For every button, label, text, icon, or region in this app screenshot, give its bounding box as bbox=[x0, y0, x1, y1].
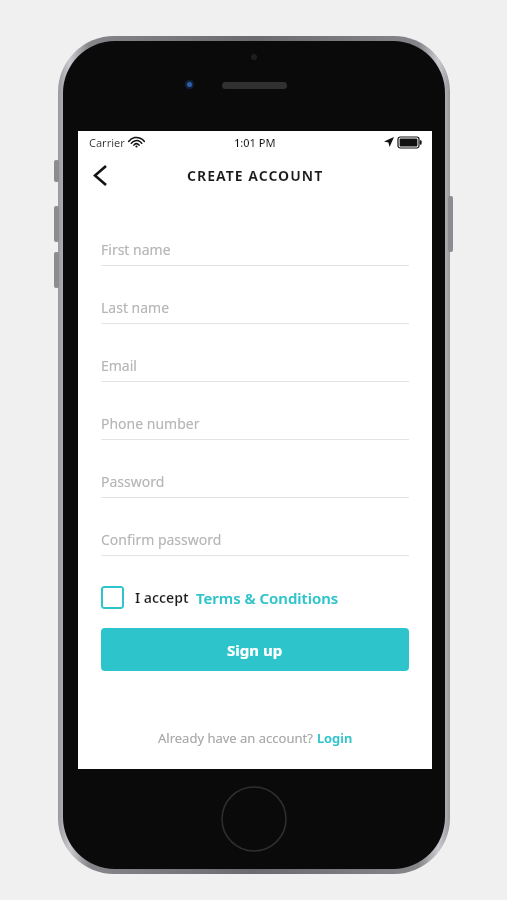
button[interactable]: Terms & Conditions bbox=[196, 588, 339, 608]
staticText: I accept bbox=[135, 588, 189, 607]
staticText: CREATE ACCOUNT bbox=[187, 166, 324, 185]
staticText: Password bbox=[101, 472, 165, 491]
button[interactable]: First name bbox=[101, 225, 409, 266]
button[interactable]: Phone number bbox=[101, 399, 409, 440]
button[interactable]: Password bbox=[101, 457, 409, 498]
button[interactable]: I accept bbox=[101, 586, 409, 609]
staticText: Confirm password bbox=[101, 530, 222, 549]
staticText: Last name bbox=[101, 298, 170, 317]
staticText: Phone number bbox=[101, 414, 200, 433]
staticText: Carrier bbox=[89, 135, 125, 150]
button[interactable]: Last name bbox=[101, 283, 409, 324]
button[interactable]: Back bbox=[78, 153, 122, 197]
staticText: Sign up bbox=[227, 640, 283, 660]
button[interactable]: Sign up bbox=[101, 628, 409, 671]
button[interactable]: Login bbox=[317, 729, 353, 747]
staticText: 1:01 PM bbox=[234, 135, 276, 150]
staticText: Email bbox=[101, 356, 137, 375]
button[interactable]: Confirm password bbox=[101, 515, 409, 556]
button[interactable]: Email bbox=[101, 341, 409, 382]
staticText: Already have an account? bbox=[158, 729, 317, 747]
staticText: First name bbox=[101, 240, 171, 259]
